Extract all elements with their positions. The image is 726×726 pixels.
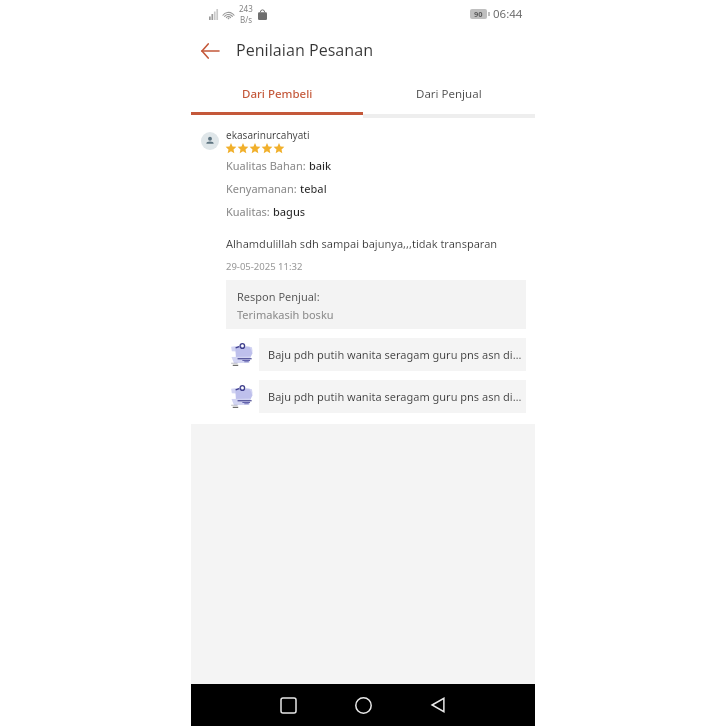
staticText: Baju pdh putih wanita seragam guru pns a… (268, 389, 522, 404)
staticText: Kenyamanan: (226, 181, 300, 196)
staticText: Kualitas: (226, 204, 273, 219)
staticText: Alhamdulillah sdh sampai bajunya,,,tidak… (226, 236, 498, 251)
staticText: B/s (240, 14, 253, 25)
button[interactable]: Back (420, 687, 456, 723)
button[interactable]: Recent apps (270, 687, 306, 723)
staticText: Respon Penjual: (237, 289, 320, 304)
staticText: 06:44 (493, 6, 523, 22)
staticText: Kualitas Bahan: (226, 158, 309, 173)
button[interactable]: Home (345, 687, 381, 723)
button[interactable]: Baju pdh putih wanita seragam guru pns a… (226, 380, 526, 413)
staticText: bagus (273, 204, 306, 219)
button[interactable]: Dari Pembeli (191, 74, 363, 113)
staticText: 29-05-2025 11:32 (226, 260, 303, 273)
staticText: Dari Penjual (416, 86, 482, 102)
staticText: baik (309, 158, 332, 173)
staticText: Penilaian Pesanan (236, 39, 374, 61)
staticText: Baju pdh putih wanita seragam guru pns a… (268, 347, 522, 362)
button[interactable]: Baju pdh putih wanita seragam guru pns a… (226, 338, 526, 371)
staticText: 90 (474, 9, 483, 19)
staticText: tebal (300, 181, 327, 196)
staticText: 243 (239, 3, 253, 14)
staticText: ekasarinurcahyati (226, 128, 310, 142)
staticText: Dari Pembeli (242, 86, 313, 102)
button[interactable]: Dari Penjual (363, 74, 535, 113)
staticText: Terimakasih bosku (237, 307, 334, 322)
button[interactable]: Back (192, 33, 228, 69)
